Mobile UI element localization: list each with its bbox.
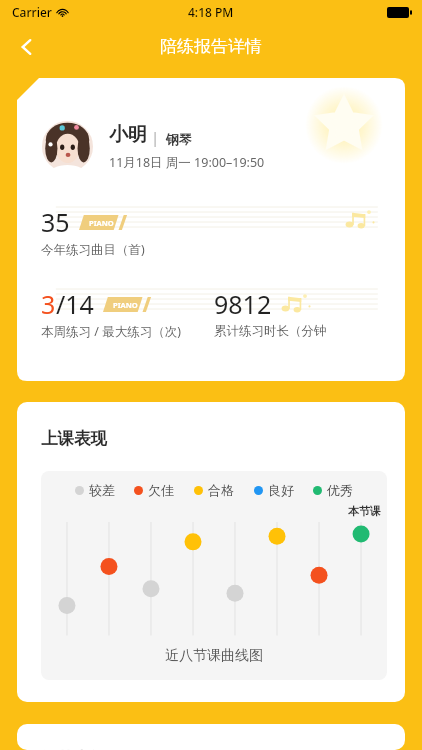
staticText: 上课表现 [41, 428, 107, 449]
staticText: 优秀 [327, 482, 353, 498]
staticText: | [151, 127, 160, 147]
staticText: 较差 [89, 482, 115, 498]
staticText: 累计练习时长（分钟 [214, 323, 327, 339]
staticText: /14 [56, 287, 94, 321]
staticText: PIANO [113, 300, 138, 310]
button[interactable]: 细节点评 [17, 724, 405, 750]
button[interactable]: 小明 [17, 78, 405, 381]
staticText: 35 [41, 205, 70, 239]
button[interactable]: 上课表现 [17, 402, 405, 702]
staticText: 合格 [208, 482, 234, 498]
staticText: 4:18 PM [188, 4, 234, 20]
staticText: 9812 [214, 287, 272, 321]
staticText: 小明 [109, 123, 147, 147]
staticText: PIANO [89, 218, 114, 228]
staticText: 良好 [268, 482, 294, 498]
staticText: 3 [41, 287, 56, 321]
staticText: 今年练习曲目（首) [41, 241, 145, 257]
staticText: 近八节课曲线图 [41, 647, 387, 665]
staticText: 钢琴 [166, 131, 192, 147]
staticText: 陪练报告详情 [160, 36, 262, 57]
button[interactable]: Back [8, 28, 46, 66]
staticText: 11月18日 周一 19:00–19:50 [109, 154, 265, 171]
staticText: 本周练习 / 最大练习（次) [41, 323, 181, 339]
staticText: 欠佳 [148, 482, 174, 498]
staticText: Carrier [12, 4, 52, 20]
staticText: 本节课 [348, 504, 381, 518]
